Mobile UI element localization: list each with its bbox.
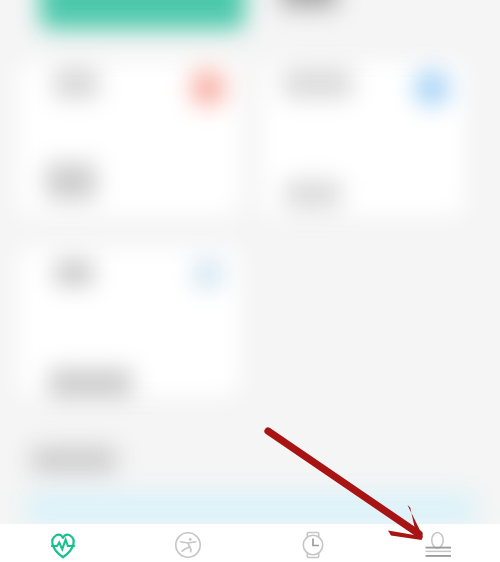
button[interactable]: Exercise xyxy=(125,524,250,562)
button[interactable]: Me xyxy=(375,524,500,562)
button[interactable]: Health xyxy=(0,524,125,562)
button[interactable]: Devices xyxy=(250,524,375,562)
